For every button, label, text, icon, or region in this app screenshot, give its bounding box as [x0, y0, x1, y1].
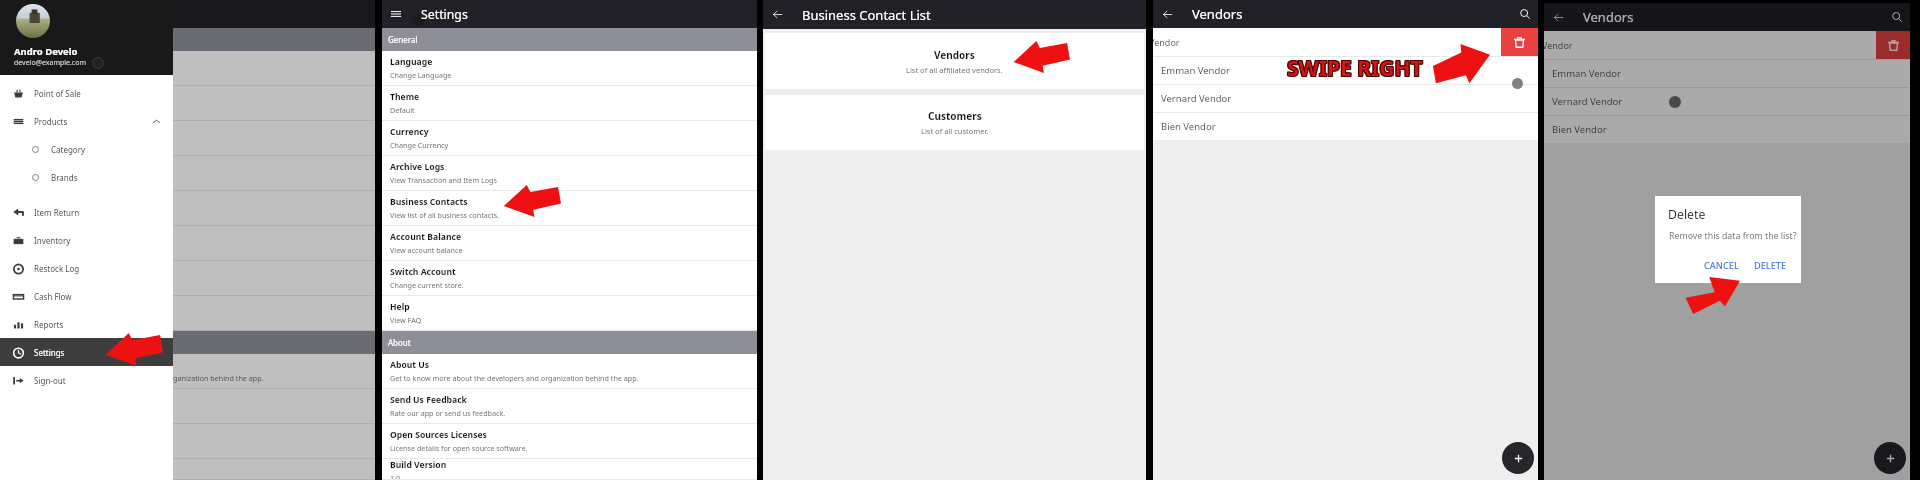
button[interactable]: Help	[7, 296, 375, 331]
button[interactable]: Restock Log	[0, 254, 173, 282]
staticText: 1.0	[390, 473, 401, 479]
button[interactable]: Language	[382, 51, 757, 86]
button[interactable]: Back	[769, 0, 786, 29]
staticText: Delete	[1668, 206, 1706, 223]
button[interactable]: Delete	[1876, 31, 1910, 59]
button[interactable]: Emman Vendor	[1544, 59, 1910, 87]
button[interactable]: Delete	[1501, 28, 1538, 56]
button[interactable]: Search	[1512, 0, 1538, 28]
staticText: View list of all business contacts.	[390, 210, 500, 220]
staticText: Sign-out	[34, 375, 66, 386]
staticText: Vernard Vendor	[1161, 92, 1232, 105]
button[interactable]: Help	[382, 296, 757, 331]
button[interactable]: Sign-out	[0, 366, 173, 394]
staticText: SWIPE RIGHT	[1286, 54, 1422, 83]
button[interactable]: Category	[0, 135, 173, 163]
button[interactable]: Back	[1159, 0, 1176, 28]
staticText: Vendors	[1192, 5, 1243, 23]
button[interactable]: Vernard Vendor	[1544, 87, 1910, 115]
button[interactable]: Point of Sale	[0, 79, 173, 107]
button[interactable]: Reports	[0, 310, 173, 338]
button[interactable]: Theme	[382, 86, 757, 121]
staticText: General	[388, 34, 418, 45]
button[interactable]: Customers	[765, 95, 1144, 150]
staticText: Currency	[390, 126, 429, 138]
button[interactable]: Products	[0, 107, 173, 135]
button[interactable]: DELETE	[1752, 257, 1789, 274]
button[interactable]: Open navigation drawer	[7, 0, 35, 28]
staticText: Get to know more about the developers an…	[15, 373, 264, 383]
button[interactable]: Archive Logs	[7, 156, 375, 191]
button[interactable]: Add vendor	[1502, 442, 1534, 474]
staticText: Open Sources Licenses	[390, 429, 487, 441]
staticText: Switch Account	[390, 266, 456, 278]
staticText: Category	[51, 144, 86, 155]
button[interactable]: CANCEL	[1702, 257, 1741, 274]
staticText: Vendors	[934, 48, 975, 62]
button[interactable]: Language	[7, 51, 375, 86]
staticText: About	[13, 337, 36, 348]
button[interactable]: Business Contacts	[7, 191, 375, 226]
staticText: Business Contact List	[802, 6, 931, 24]
staticText: License details for open source software…	[390, 443, 528, 453]
button[interactable]: Cash Flow	[0, 282, 173, 310]
button[interactable]: Open navigation drawer	[382, 0, 410, 28]
staticText: Rate our app or send us feedback.	[390, 408, 506, 418]
button[interactable]: Open Sources Licenses	[382, 424, 757, 459]
button[interactable]: Switch Account	[382, 261, 757, 296]
button[interactable]: Item Return	[0, 198, 173, 226]
staticText: Inventory	[34, 235, 71, 246]
button[interactable]: Currency	[7, 121, 375, 156]
staticText: Send Us Feedback	[390, 394, 467, 406]
staticText: Language	[390, 56, 433, 68]
button[interactable]: Business Contacts	[382, 191, 757, 226]
staticText: Theme	[15, 91, 45, 103]
button[interactable]: Send Us Feedback	[7, 389, 375, 424]
staticText: Vernard Vendor	[1552, 95, 1623, 108]
staticText: View FAQ	[15, 315, 47, 325]
staticText: View list of all business contacts.	[15, 210, 125, 220]
staticText: Settings	[421, 6, 468, 23]
button[interactable]: About Us	[382, 354, 757, 389]
staticText: SWIPE RIGHT	[1288, 53, 1424, 82]
staticText: Brands	[51, 172, 78, 183]
staticText: SWIPE RIGHT	[1288, 55, 1424, 84]
button[interactable]: Vendors	[765, 33, 1144, 89]
button[interactable]: Settings	[0, 338, 173, 366]
staticText: About Us	[15, 359, 55, 371]
button[interactable]: Back	[1550, 3, 1567, 31]
staticText: About Us	[390, 359, 430, 371]
staticText: Vendor	[1153, 36, 1180, 48]
button[interactable]: Vernard Vendor	[1153, 84, 1538, 112]
button[interactable]: Account Balance	[7, 226, 375, 261]
button[interactable]: Bien Vendor	[1544, 115, 1910, 143]
staticText: SWIPE RIGHT	[1287, 55, 1423, 84]
staticText: SWIPE RIGHT	[1286, 53, 1422, 82]
button[interactable]: Build Version	[7, 459, 375, 480]
button[interactable]: Inventory	[0, 226, 173, 254]
button[interactable]: Open Sources Licenses	[7, 424, 375, 459]
button[interactable]: Archive Logs	[382, 156, 757, 191]
button[interactable]: Bien Vendor	[1153, 112, 1538, 140]
button[interactable]: Search	[1884, 3, 1910, 31]
button[interactable]: Account Balance	[382, 226, 757, 261]
button[interactable]: Currency	[382, 121, 757, 156]
button[interactable]: Switch Account	[7, 261, 375, 296]
button[interactable]: Send Us Feedback	[382, 389, 757, 424]
button[interactable]: Brands	[0, 163, 173, 191]
button[interactable]: Emman Vendor	[1153, 56, 1538, 84]
staticText: Switch Account	[15, 266, 81, 278]
button[interactable]: About Us	[7, 354, 375, 389]
button[interactable]: Build Version	[382, 459, 757, 480]
button[interactable]: Add vendor	[1874, 442, 1906, 474]
staticText: Vendors	[1583, 8, 1634, 26]
button[interactable]: Theme	[7, 86, 375, 121]
staticText: Emman Vendor	[1161, 64, 1230, 77]
staticText: Business Contacts	[390, 196, 468, 208]
staticText: Restock Log	[34, 263, 80, 274]
staticText: Settings	[34, 347, 65, 358]
staticText: Point of Sale	[34, 88, 81, 99]
